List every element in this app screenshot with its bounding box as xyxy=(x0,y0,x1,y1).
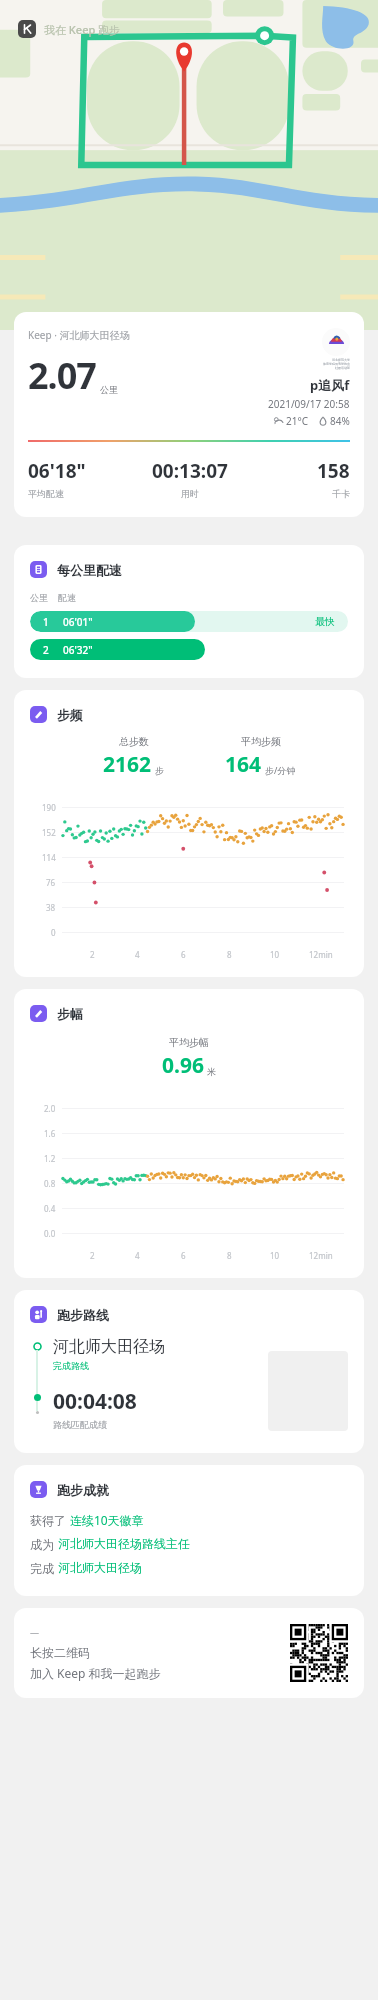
staticText: 0 xyxy=(51,927,56,938)
button[interactable]: 步幅 xyxy=(14,989,364,1278)
staticText: 步/分钟 xyxy=(265,764,296,776)
button[interactable]: 跑步成就 xyxy=(14,1465,364,1596)
staticText: 114 xyxy=(42,852,56,863)
staticText: 2162 xyxy=(103,750,152,779)
staticText: 我在 Keep 跑步 xyxy=(44,22,121,37)
staticText: 完成 xyxy=(30,1560,58,1576)
staticText: 2.07 xyxy=(28,351,96,400)
staticText: 8 xyxy=(227,1250,232,1261)
button[interactable]: — xyxy=(14,1608,364,1698)
staticText: 76 xyxy=(46,877,56,888)
staticText: 2.0 xyxy=(44,1103,56,1114)
button[interactable]: 2 xyxy=(30,639,348,660)
staticText: 06'32" xyxy=(63,643,93,657)
staticText: 164 xyxy=(225,750,262,779)
button[interactable]: Keep xyxy=(18,20,121,38)
staticText: 完成路线 xyxy=(53,1360,89,1371)
staticText: 4 xyxy=(135,1250,140,1261)
staticText: 公里 xyxy=(100,384,118,395)
staticText: 用时 xyxy=(181,488,199,499)
staticText: 6 xyxy=(181,949,186,960)
button[interactable]: 每公里配速 xyxy=(14,545,364,678)
staticText: 00:13:07 xyxy=(152,458,228,484)
staticText: 12min xyxy=(309,949,333,960)
staticText: 38 xyxy=(46,902,56,913)
button[interactable]: 步频 xyxy=(14,690,364,977)
staticText: 190 xyxy=(42,802,56,813)
staticText: 2021/09/17 20:58 xyxy=(268,397,350,411)
staticText: 步 xyxy=(155,765,164,776)
staticText: 84% xyxy=(330,414,350,428)
staticText: 1.2 xyxy=(44,1153,56,1164)
staticText: 152 xyxy=(42,827,56,838)
staticText: 跑步路线 xyxy=(57,1307,109,1323)
staticText: 平均步幅 xyxy=(169,1036,209,1049)
button[interactable]: 跑步路线 xyxy=(14,1290,364,1453)
staticText: 0.96 xyxy=(162,1051,204,1080)
staticText: 千卡 xyxy=(332,488,350,499)
staticText: 6 xyxy=(181,1250,186,1261)
staticText: 1 xyxy=(43,615,49,629)
staticText: 跑步成就 xyxy=(57,1482,109,1498)
staticText: 河北师范大学 xyxy=(332,358,350,362)
staticText: 0.4 xyxy=(44,1203,56,1214)
staticText: 2 xyxy=(90,949,95,960)
staticText: 连续10天徽章 xyxy=(70,1512,144,1528)
staticText: 平均配速 xyxy=(28,488,64,499)
staticText: 社团活动部 xyxy=(335,366,350,370)
staticText: 总步数 xyxy=(119,735,149,748)
staticText: 河北师大田径场 xyxy=(58,1560,142,1575)
staticText: 4 xyxy=(135,949,140,960)
staticText: 体育学院羽毛球协会 xyxy=(323,362,350,366)
staticText: Keep · 河北师大田径场 xyxy=(28,328,130,342)
staticText: 每公里配速 xyxy=(57,562,122,578)
staticText: 步频 xyxy=(57,707,83,723)
staticText: 1.6 xyxy=(44,1128,56,1139)
staticText: 2 xyxy=(43,643,49,657)
staticText: 成为 xyxy=(30,1536,58,1552)
staticText: 平均步频 xyxy=(241,735,281,748)
staticText: 0.8 xyxy=(44,1178,56,1189)
staticText: 2 xyxy=(90,1250,95,1261)
button[interactable]: 1 xyxy=(30,611,348,632)
staticText: 河北师大田径场路线主任 xyxy=(58,1536,190,1551)
staticText: 米 xyxy=(207,1066,216,1077)
staticText: 158 xyxy=(317,458,350,484)
staticText: 00:04:08 xyxy=(53,1387,137,1416)
staticText: 长按二维码 xyxy=(30,1645,90,1660)
staticText: 获得了 xyxy=(30,1512,70,1528)
staticText: 06'01" xyxy=(63,615,93,629)
staticText: 12min xyxy=(309,1250,333,1261)
staticText: 21°C xyxy=(286,414,309,428)
staticText: 06'18" xyxy=(28,458,86,484)
staticText: 配速 xyxy=(58,592,76,603)
staticText: 公里 xyxy=(30,592,48,603)
staticText: 最快 xyxy=(315,615,335,628)
staticText: p追风f xyxy=(310,376,350,394)
staticText: 步幅 xyxy=(57,1006,83,1022)
staticText: 加入 Keep 和我一起跑步 xyxy=(30,1665,161,1681)
staticText: 10 xyxy=(270,1250,280,1261)
staticText: 10 xyxy=(270,949,280,960)
staticText: 路线匹配成绩 xyxy=(53,1419,107,1430)
staticText: 0.0 xyxy=(44,1228,56,1239)
other: 二维码 xyxy=(290,1624,348,1682)
staticText: 河北师大田径场 xyxy=(53,1337,165,1357)
staticText: 8 xyxy=(227,949,232,960)
staticText: — xyxy=(30,1626,40,1638)
